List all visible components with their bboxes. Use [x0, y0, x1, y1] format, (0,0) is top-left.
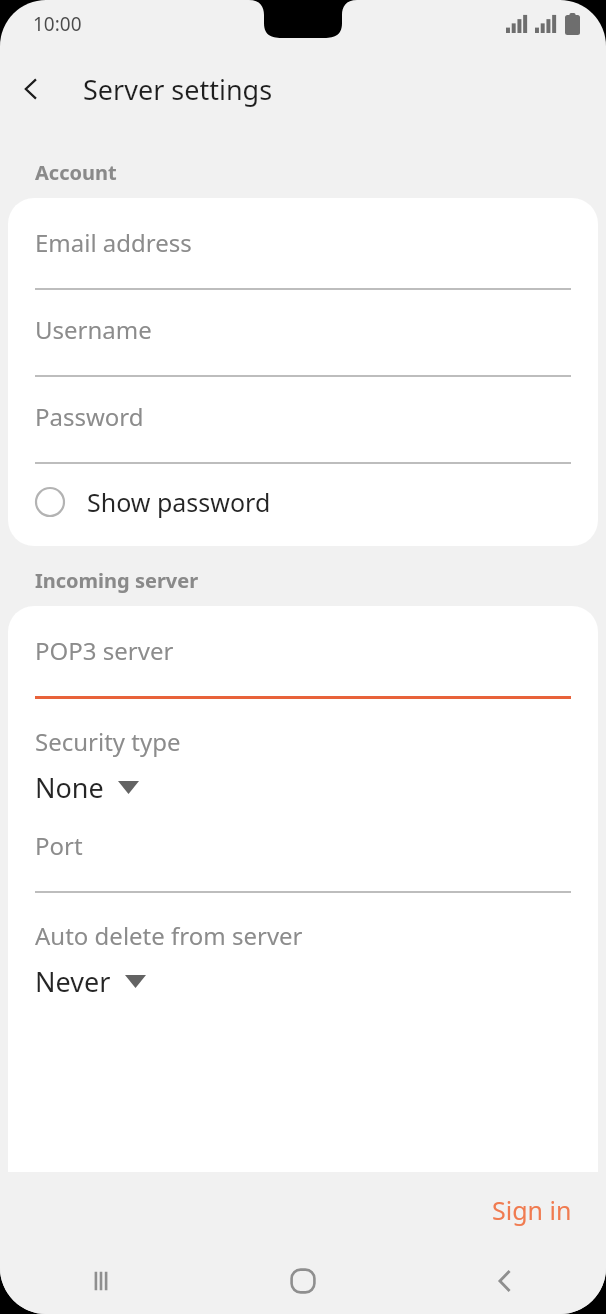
- staticText: Security type: [35, 725, 181, 758]
- staticText: Sign in: [492, 1193, 572, 1227]
- button[interactable]: Security type: [35, 699, 571, 806]
- staticText: Account: [35, 159, 117, 186]
- staticText: POP3 server: [35, 634, 174, 667]
- staticText: Never: [35, 963, 111, 1000]
- staticText: Email address: [35, 226, 192, 259]
- button[interactable]: Back: [0, 58, 62, 120]
- staticText: Show password: [87, 485, 271, 519]
- staticText: 10:00: [33, 11, 82, 37]
- button[interactable]: Auto delete from server: [35, 893, 571, 1000]
- button[interactable]: Username: [35, 290, 571, 377]
- button[interactable]: Home: [202, 1248, 404, 1314]
- button[interactable]: POP3 server: [35, 606, 571, 699]
- button[interactable]: Email address: [35, 198, 571, 290]
- staticText: Server settings: [83, 71, 273, 108]
- staticText: Auto delete from server: [35, 919, 303, 952]
- button[interactable]: Password: [35, 377, 571, 464]
- button[interactable]: Back: [404, 1248, 606, 1314]
- staticText: Port: [35, 829, 83, 862]
- staticText: None: [35, 769, 104, 806]
- button[interactable]: Port: [35, 806, 571, 893]
- button[interactable]: Show password: [35, 464, 571, 540]
- staticText: Incoming server: [35, 567, 199, 594]
- staticText: Username: [35, 313, 152, 346]
- staticText: Password: [35, 400, 144, 433]
- button[interactable]: Sign in: [478, 1185, 586, 1235]
- button[interactable]: Recents: [0, 1248, 202, 1314]
